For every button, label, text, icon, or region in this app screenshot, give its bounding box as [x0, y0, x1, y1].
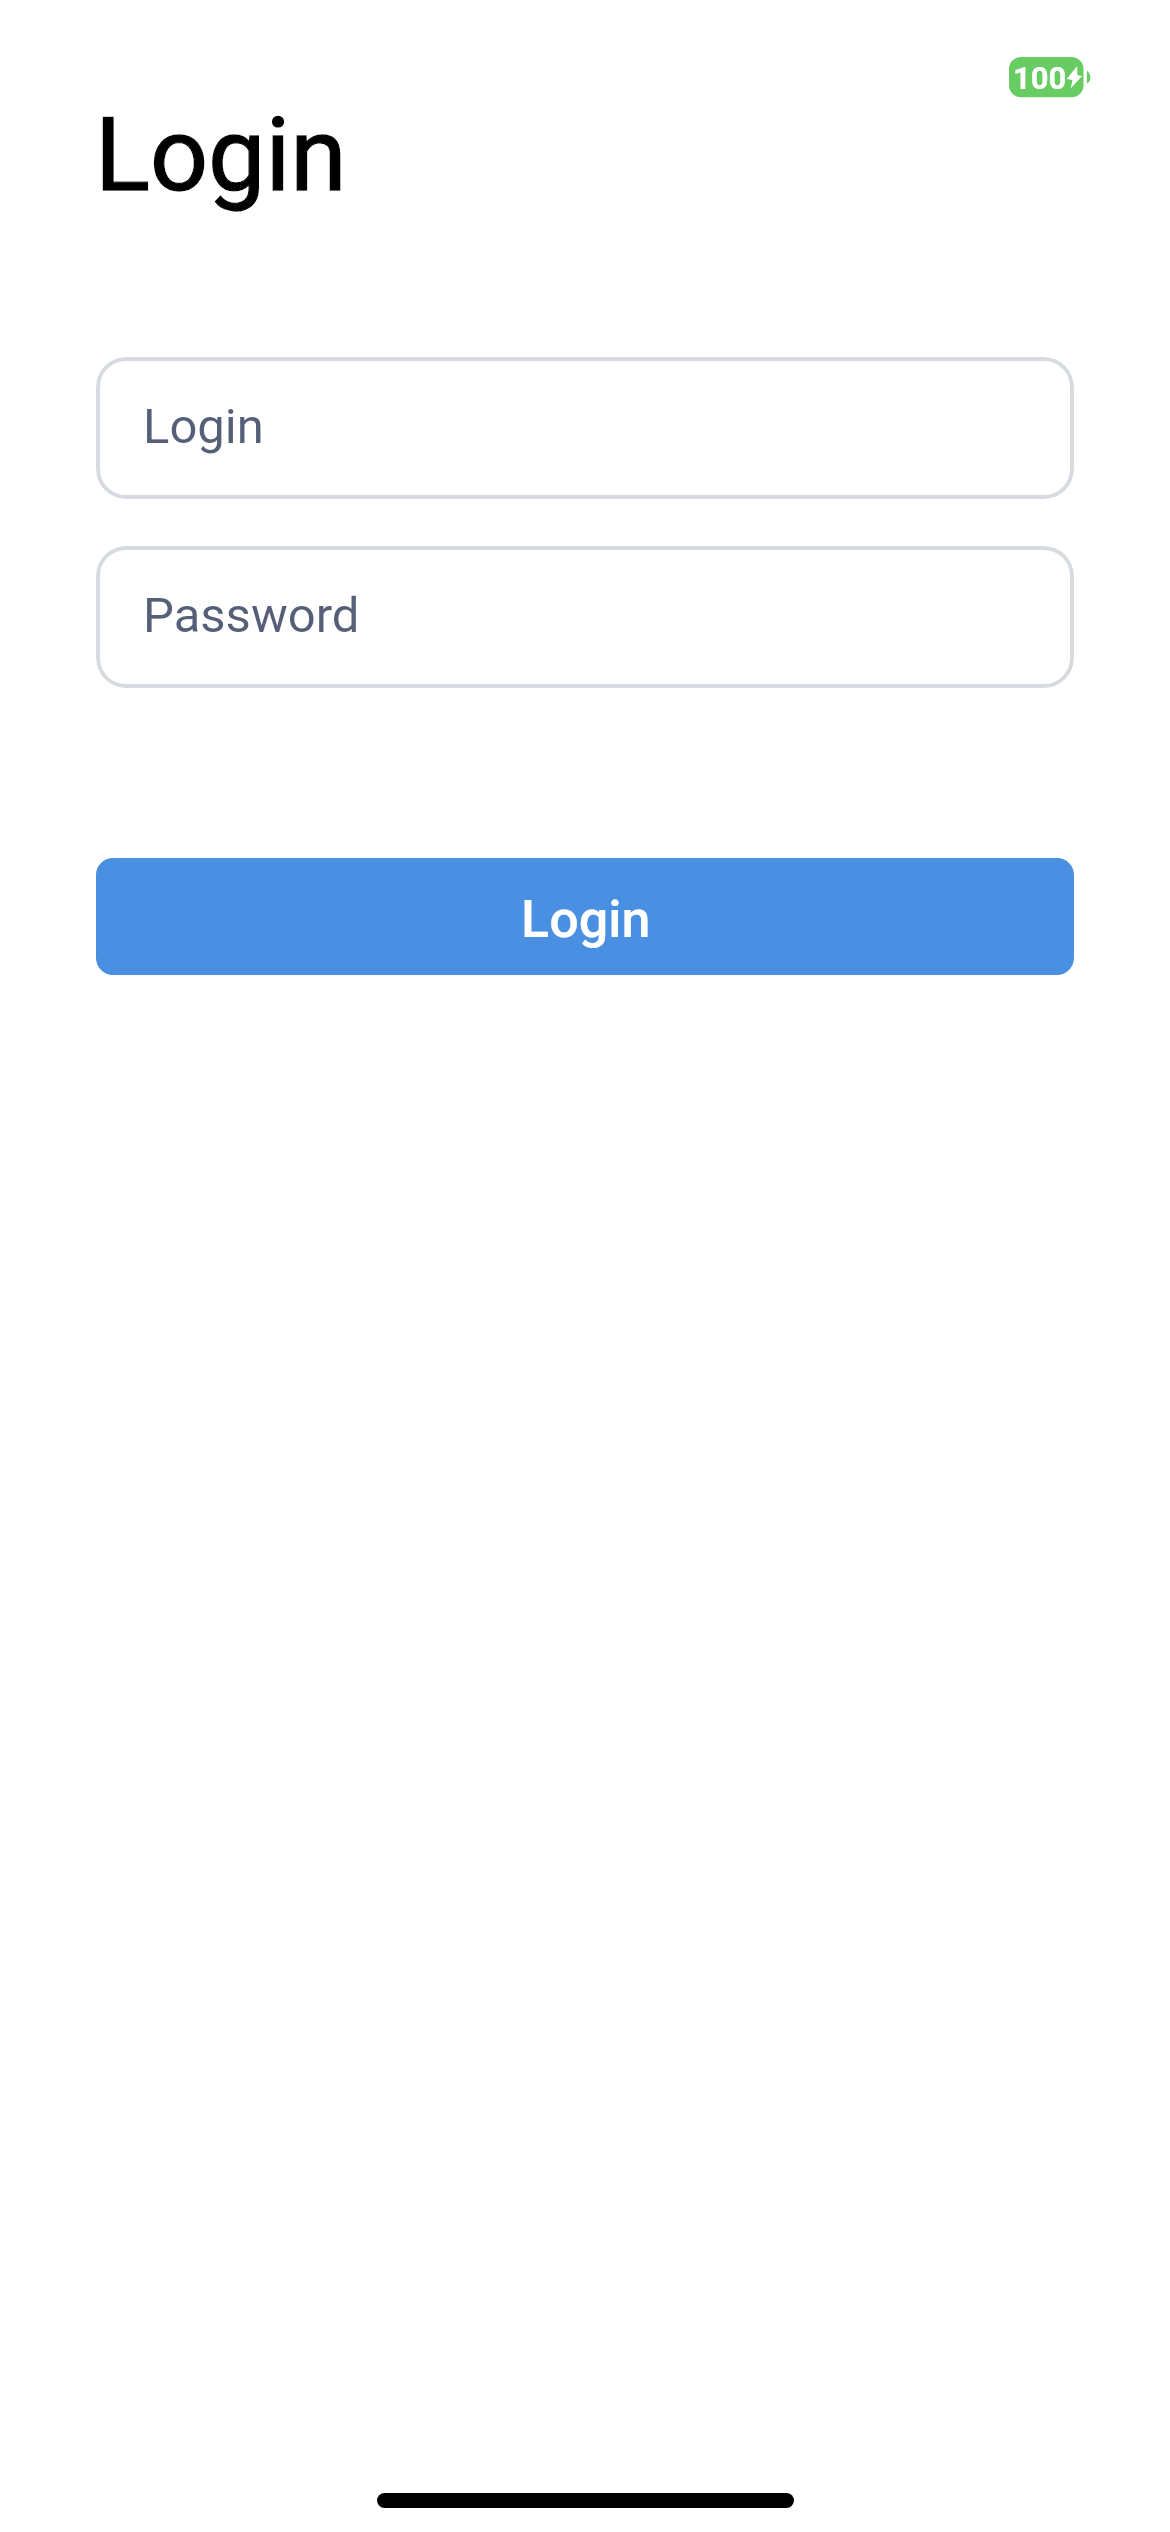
- other: Battery 100 percent, charging: [1009, 57, 1093, 98]
- staticText: 100: [1013, 60, 1067, 96]
- staticText: Login: [521, 889, 651, 950]
- staticText: Password: [143, 587, 360, 644]
- button[interactable]: Password: [96, 546, 1074, 688]
- staticText: Login: [143, 398, 264, 455]
- staticText: Login: [95, 95, 347, 215]
- staticText: Login: [95, 95, 347, 215]
- button[interactable]: Login: [96, 858, 1074, 975]
- button[interactable]: Login: [96, 357, 1074, 499]
